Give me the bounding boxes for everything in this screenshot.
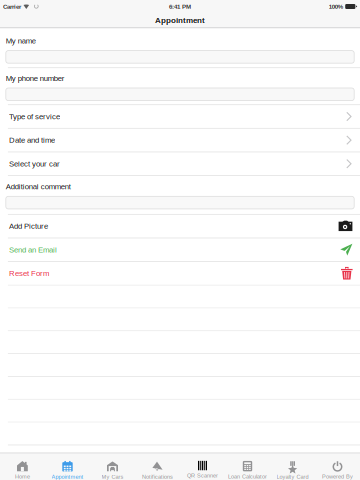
staticText: Appointment [155, 16, 205, 25]
staticText: Loan Calculator [228, 474, 267, 480]
button[interactable]: Home [0, 453, 45, 480]
staticText: Send an Email [9, 245, 57, 254]
staticText: Appointment [51, 474, 83, 480]
button[interactable]: Reset Form [0, 262, 360, 285]
button[interactable]: Appointment [45, 453, 90, 480]
button[interactable]: QR Scanner [180, 453, 225, 480]
staticText: Select your car [9, 159, 60, 168]
button[interactable]: My Cars [90, 453, 135, 480]
staticText: My name [6, 37, 36, 45]
button[interactable]: Type of service [0, 105, 360, 128]
button[interactable]: Select your car [0, 152, 360, 175]
button[interactable]: Add Picture [0, 215, 360, 238]
staticText: Notifications [142, 474, 173, 480]
staticText: 100% [329, 3, 343, 10]
button[interactable]: Powered By [315, 453, 360, 480]
staticText: Loyalty Card [276, 474, 308, 480]
button[interactable]: Date and time [0, 129, 360, 151]
staticText: QR Scanner [187, 472, 218, 479]
staticText: Additional comment [6, 182, 71, 191]
staticText: Date and time [9, 136, 55, 144]
staticText: Reset Form [9, 269, 49, 278]
staticText: Home [15, 474, 30, 480]
staticText: My Cars [101, 474, 123, 480]
staticText: Carrier [3, 3, 21, 10]
staticText: Powered By [322, 474, 353, 480]
button[interactable]: Loan Calculator [225, 453, 270, 480]
staticText: My phone number [6, 74, 65, 83]
staticText: Add Picture [9, 222, 48, 230]
staticText: 6:41 PM [169, 3, 191, 10]
button[interactable]: Notifications [135, 453, 180, 480]
staticText: Type of service [9, 112, 60, 121]
button[interactable]: Send an Email [0, 238, 360, 261]
button[interactable]: Loyalty Card [270, 453, 315, 480]
